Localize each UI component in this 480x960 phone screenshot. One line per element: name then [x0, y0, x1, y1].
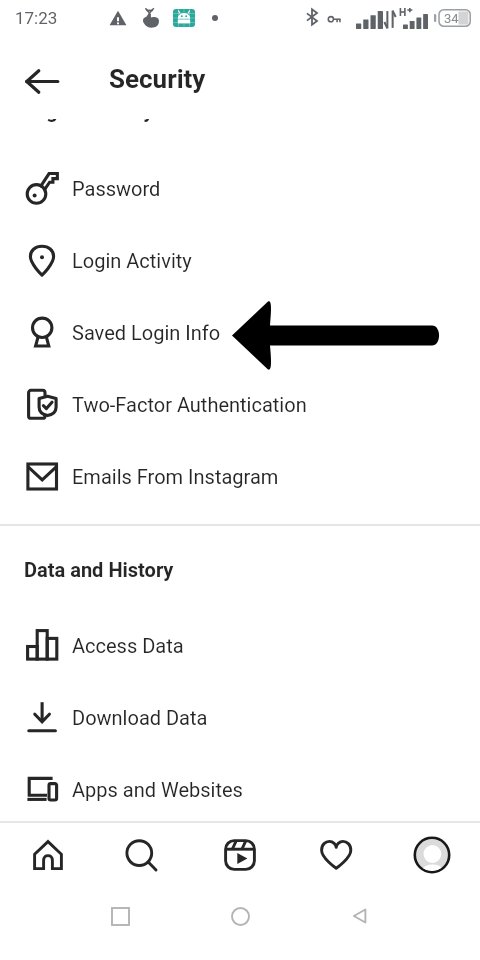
staticText: Emails From Instagram — [72, 465, 279, 488]
button[interactable]: Home — [224, 900, 256, 932]
button[interactable]: Reels — [208, 822, 272, 888]
button[interactable]: Profile — [400, 822, 464, 888]
staticText: Password — [72, 177, 161, 200]
staticText: 17:23 — [15, 8, 58, 28]
button[interactable]: Access Data — [0, 609, 480, 681]
button[interactable]: Login Security — [0, 99, 480, 126]
staticText: Two-Factor Authentication — [72, 393, 307, 416]
button[interactable]: Apps and Websites — [0, 753, 480, 825]
button[interactable]: Search — [109, 822, 173, 888]
button[interactable]: Activity — [304, 822, 368, 888]
staticText: Access Data — [72, 634, 184, 657]
staticText: 34 — [444, 11, 459, 26]
button[interactable]: Download Data — [0, 681, 480, 753]
button[interactable]: Two-Factor Authentication — [0, 368, 480, 440]
button[interactable]: Home — [16, 822, 80, 888]
button[interactable]: Back — [18, 57, 66, 105]
staticText: Download Data — [72, 706, 208, 729]
staticText: Login Activity — [72, 249, 192, 272]
staticText: Saved Login Info — [72, 321, 221, 344]
button[interactable]: Emails From Instagram — [0, 440, 480, 512]
button[interactable]: Back — [344, 900, 376, 932]
button[interactable]: Password — [0, 152, 480, 224]
staticText: Apps and Websites — [72, 778, 243, 801]
button[interactable]: Saved Login Info — [0, 296, 480, 368]
button[interactable]: Recents — [104, 900, 136, 932]
staticText: Security — [109, 64, 206, 94]
button[interactable]: Login Activity — [0, 224, 480, 296]
staticText: Data and History — [24, 558, 174, 581]
staticText: Login Security — [24, 99, 154, 122]
